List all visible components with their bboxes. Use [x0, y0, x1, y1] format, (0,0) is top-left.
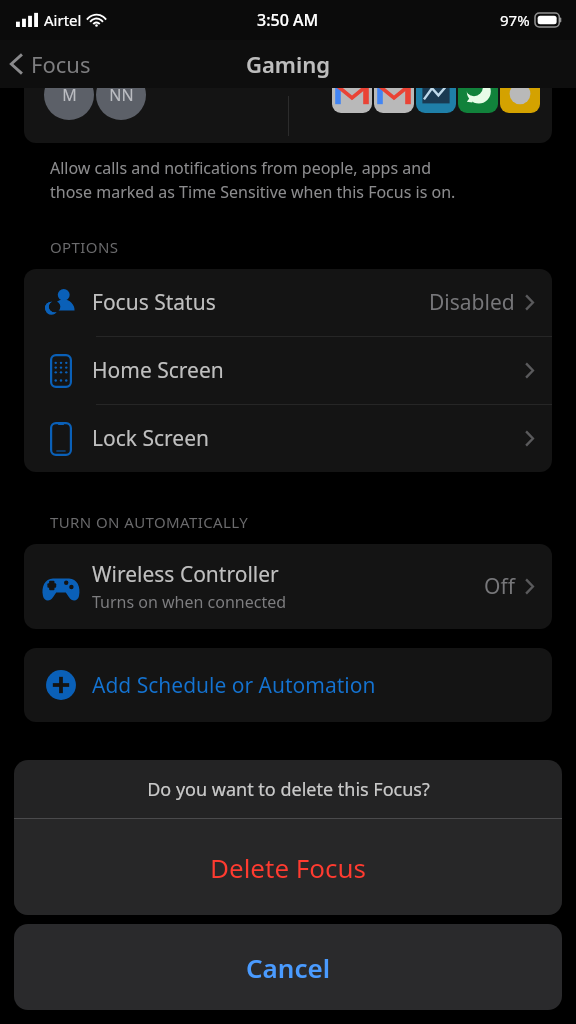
- button[interactable]: Cancel: [14, 924, 562, 1010]
- staticText: Add Schedule or Automation: [92, 671, 376, 700]
- staticText: Cancel: [246, 950, 331, 985]
- button[interactable]: Home Screen: [24, 337, 552, 404]
- staticText: Focus Status: [92, 288, 429, 317]
- staticText: Off: [484, 572, 515, 601]
- staticText: 97%: [500, 10, 530, 30]
- button[interactable]: Focus Status: [24, 269, 552, 336]
- staticText: Gaming: [246, 49, 330, 79]
- staticText: Lock Screen: [92, 424, 525, 453]
- button[interactable]: Delete Focus: [14, 819, 562, 915]
- staticText: TURN ON AUTOMATICALLY: [50, 512, 249, 532]
- staticText: Airtel: [44, 10, 82, 30]
- staticText: Wireless Controller: [92, 560, 279, 589]
- staticText: OPTIONS: [50, 237, 119, 257]
- staticText: Disabled: [429, 288, 515, 317]
- staticText: NN: [109, 88, 134, 106]
- staticText: Allow calls and notifications from peopl…: [50, 157, 456, 203]
- button[interactable]: Wireless Controller: [24, 544, 552, 629]
- button[interactable]: Add Schedule or Automation: [24, 648, 552, 722]
- staticText: Do you want to delete this Focus?: [147, 777, 430, 802]
- staticText: Delete Focus: [210, 850, 367, 885]
- button[interactable]: Lock Screen: [24, 405, 552, 472]
- button[interactable]: Focus: [0, 45, 101, 83]
- staticText: M: [62, 88, 77, 106]
- staticText: Turns on when connected: [92, 591, 287, 613]
- staticText: Home Screen: [92, 356, 525, 385]
- staticText: Focus: [31, 49, 91, 79]
- staticText: 3:50 AM: [257, 9, 319, 31]
